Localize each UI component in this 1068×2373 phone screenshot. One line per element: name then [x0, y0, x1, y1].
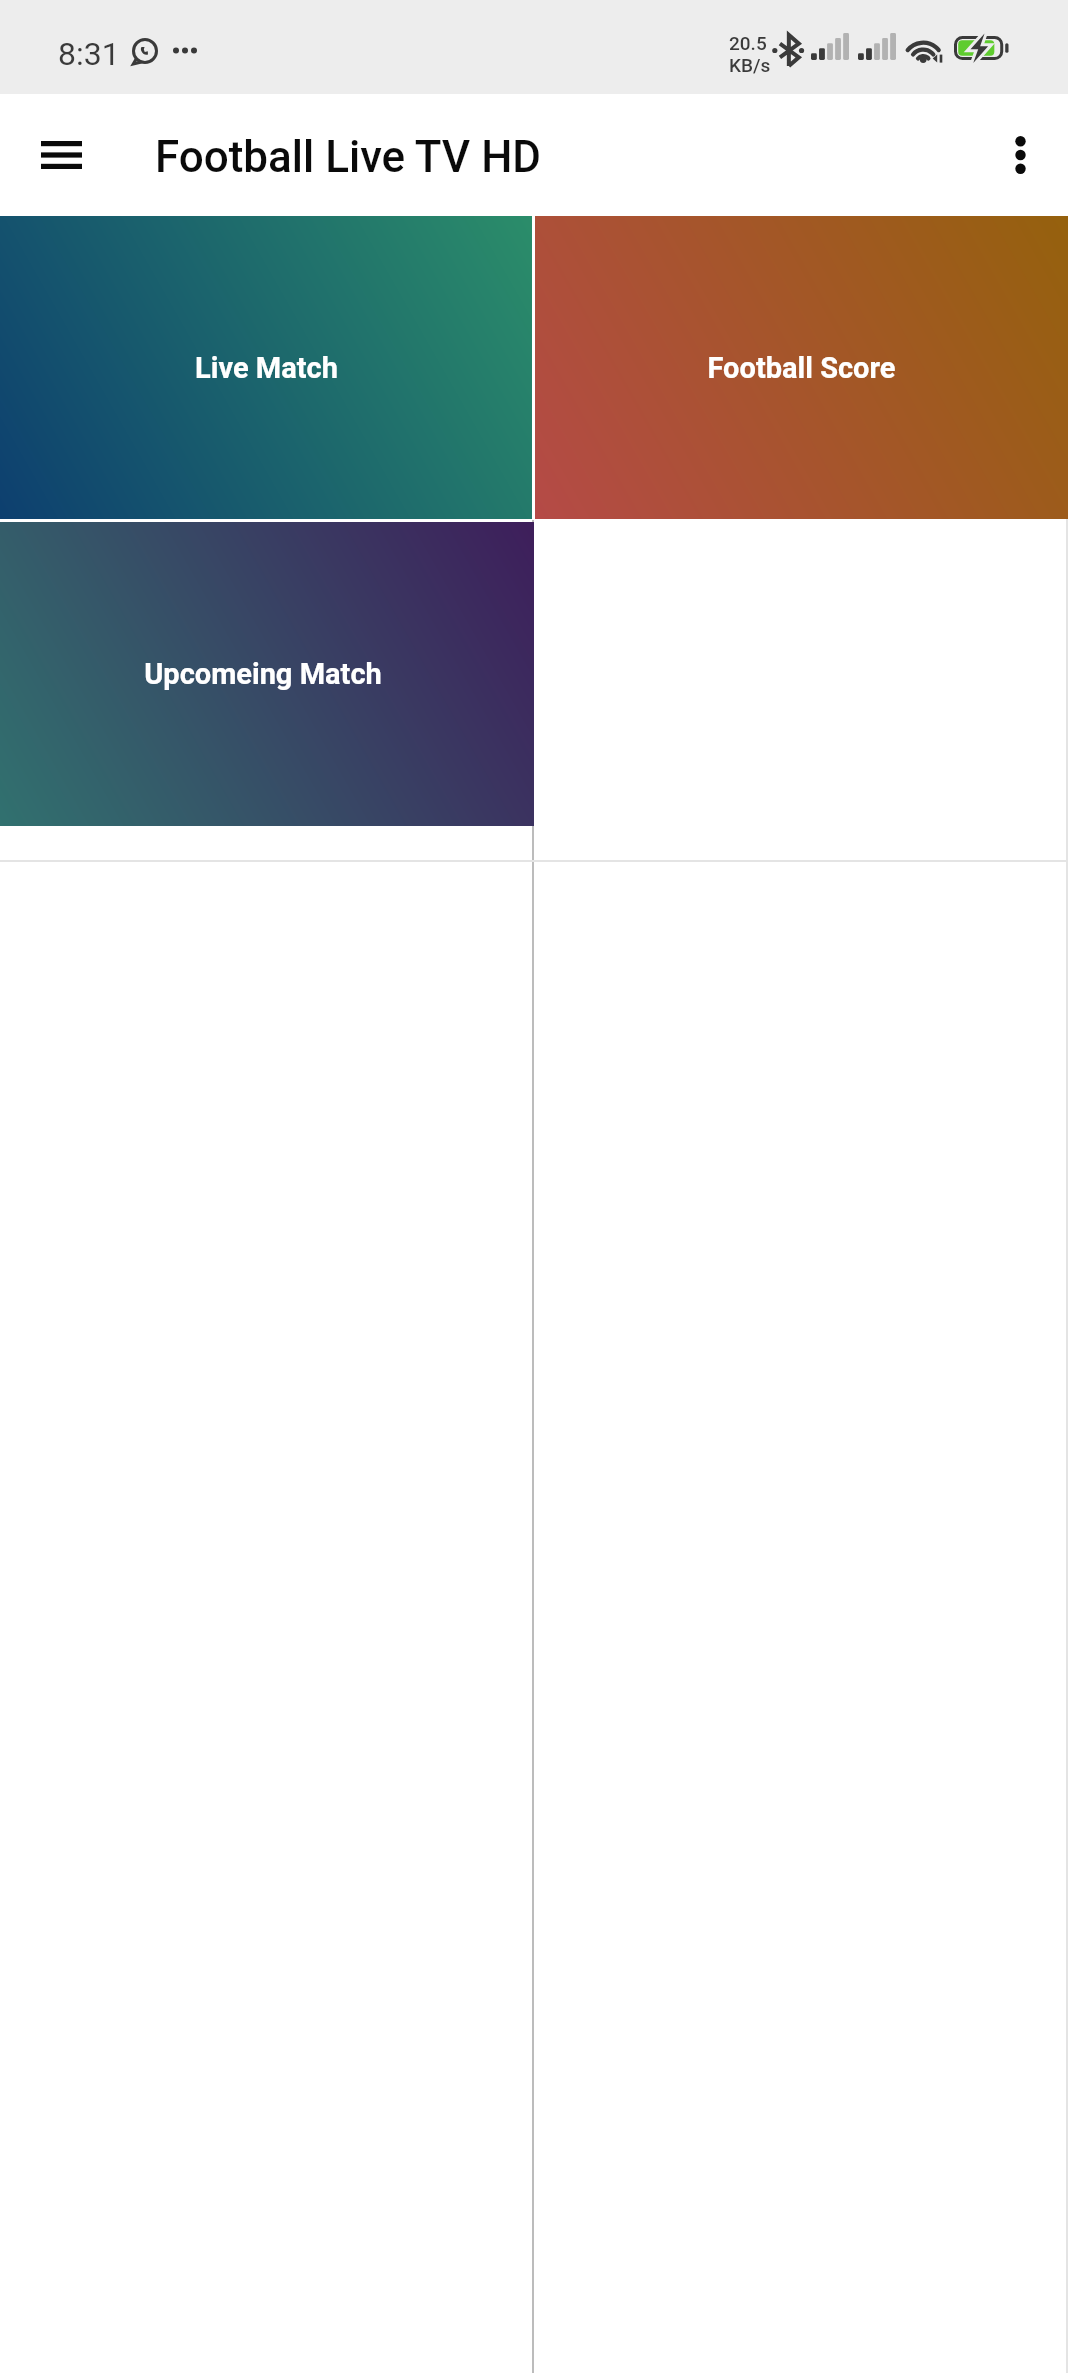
staticText: Football Live TV HD [155, 131, 542, 182]
staticText: Live Match [195, 351, 338, 385]
button[interactable]: More options [980, 115, 1060, 195]
button[interactable]: Upcomeing Match [0, 522, 534, 826]
staticText: 8:31 [58, 35, 120, 73]
button[interactable]: Football Score [535, 216, 1068, 519]
button[interactable]: Live Match [0, 216, 532, 519]
staticText: Upcomeing Match [144, 657, 382, 691]
staticText: KB/s [729, 54, 771, 76]
staticText: Football Score [707, 351, 896, 385]
button[interactable]: Open navigation drawer [19, 113, 103, 197]
staticText: 20.5 [729, 32, 767, 54]
